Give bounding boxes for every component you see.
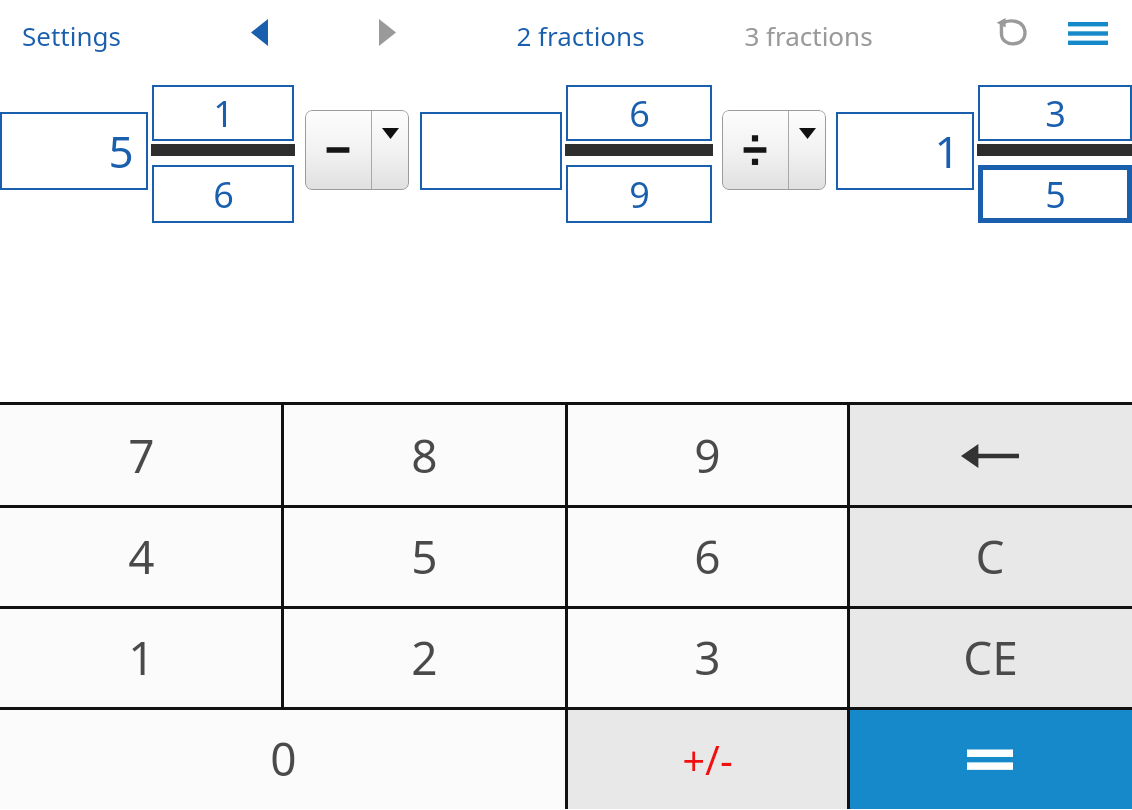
button[interactable]: 3 [566,607,848,708]
staticText: 8 [411,424,438,487]
staticText: 2 [411,626,438,689]
staticText: 1 [213,89,234,138]
staticText: 7 [128,424,155,487]
staticText: 2 fractions [516,18,645,53]
button[interactable]: Next [364,12,410,52]
button[interactable]: 0 [0,708,566,809]
button[interactable]: 9 [566,405,848,506]
button[interactable]: Backspace [848,405,1132,506]
button[interactable]: Numerator field [978,85,1132,141]
staticText: 6 [694,525,721,588]
staticText: 5 [411,525,438,588]
button[interactable]: C [848,506,1132,607]
button[interactable]: 2 [282,607,566,708]
button[interactable]: Undo [986,8,1038,56]
button[interactable]: Settings [18,14,125,57]
staticText: 3 [1045,89,1066,138]
staticText: 3 [694,626,721,689]
button[interactable]: Whole number field [836,112,974,190]
staticText: +/- [682,732,733,786]
button[interactable]: 6 [566,506,848,607]
button[interactable]: Numerator field [566,85,712,141]
button[interactable]: Denominator field [978,165,1132,223]
staticText: 4 [128,525,155,588]
button[interactable]: 1 [0,607,282,708]
staticText: 6 [213,170,234,219]
staticText: 0 [270,727,297,790]
staticText: CE [963,626,1018,689]
staticText: 9 [629,170,650,219]
button[interactable]: 5 [282,506,566,607]
staticText: Settings [22,18,121,53]
button[interactable]: Denominator field [152,165,294,223]
staticText: 1 [128,626,155,689]
staticText: 1 [934,121,960,181]
button[interactable]: Menu [1060,10,1116,56]
staticText: 3 fractions [744,18,873,53]
button[interactable]: 7 [0,405,282,506]
button[interactable]: Denominator field [566,165,712,223]
staticText: C [975,525,1005,588]
button[interactable]: Divide operator [722,110,826,190]
staticText: 9 [694,424,721,487]
button[interactable]: 8 [282,405,566,506]
button[interactable]: Numerator field [152,85,294,141]
button[interactable]: Equals [848,708,1132,809]
staticText: 5 [1045,170,1066,219]
staticText: 6 [629,89,650,138]
button[interactable]: 2 fractions [512,14,649,57]
button[interactable]: Previous [236,12,282,52]
button[interactable]: 4 [0,506,282,607]
button[interactable]: Whole number field [0,112,148,190]
button[interactable]: CE [848,607,1132,708]
staticText: 5 [108,121,134,181]
button[interactable]: +/- [566,708,848,809]
button[interactable]: Whole number field [420,112,562,190]
button[interactable]: Minus operator [305,110,409,190]
button[interactable]: 3 fractions [740,14,877,57]
